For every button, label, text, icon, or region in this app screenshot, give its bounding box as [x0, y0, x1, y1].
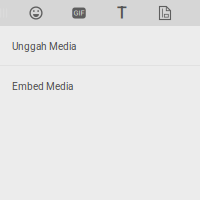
staticText: T	[117, 4, 127, 22]
staticText: GIF	[73, 9, 84, 17]
staticText: Unggah Media	[12, 41, 76, 52]
button[interactable]: Attach document	[150, 0, 180, 26]
button[interactable]: Emoji	[21, 0, 51, 26]
button[interactable]: GIF	[64, 0, 94, 26]
button[interactable]: Unggah Media	[0, 26, 200, 65]
staticText: Embed Media	[12, 81, 73, 92]
button[interactable]: Text formatting	[107, 0, 137, 26]
button[interactable]: Embed Media	[0, 66, 200, 105]
